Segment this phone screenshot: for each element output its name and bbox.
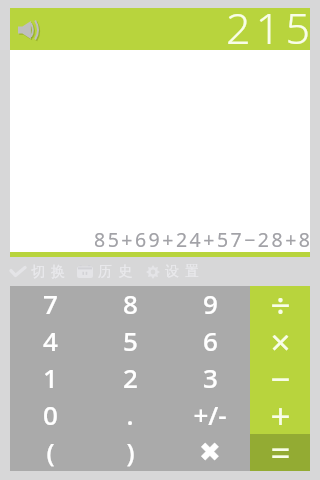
staticText: . bbox=[126, 397, 134, 432]
staticText: 85+69+24+57−28+8 bbox=[94, 226, 313, 253]
staticText: 215 bbox=[226, 0, 316, 57]
button[interactable]: × bbox=[250, 323, 310, 360]
button[interactable]: 切换 bbox=[10, 263, 72, 280]
button[interactable]: = bbox=[250, 434, 310, 471]
staticText: 3 bbox=[203, 360, 218, 395]
button[interactable]: ) bbox=[90, 434, 170, 471]
button[interactable]: Sound bbox=[18, 21, 41, 39]
button[interactable]: 2 bbox=[90, 360, 170, 397]
button[interactable]: ÷ bbox=[250, 286, 310, 323]
staticText: +/- bbox=[193, 397, 227, 432]
staticText: 历史 bbox=[98, 263, 139, 280]
staticText: ÷ bbox=[270, 281, 291, 329]
staticText: ✖ bbox=[199, 437, 221, 467]
button[interactable]: 9 bbox=[170, 286, 250, 323]
button[interactable]: − bbox=[250, 360, 310, 397]
button[interactable]: 设置 bbox=[146, 263, 206, 280]
button[interactable]: 1 bbox=[10, 360, 90, 397]
staticText: = bbox=[270, 429, 291, 477]
staticText: 2 bbox=[123, 360, 138, 395]
staticText: ) bbox=[126, 434, 135, 469]
staticText: − bbox=[270, 355, 291, 403]
staticText: 7 bbox=[43, 286, 58, 321]
button[interactable]: 6 bbox=[170, 323, 250, 360]
staticText: 4 bbox=[43, 323, 58, 358]
button[interactable]: ✖ bbox=[170, 434, 250, 471]
staticText: + bbox=[270, 392, 291, 440]
button[interactable]: +/- bbox=[170, 397, 250, 434]
staticText: 8 bbox=[123, 286, 138, 321]
button[interactable]: 3 bbox=[170, 360, 250, 397]
button[interactable]: + bbox=[250, 397, 310, 434]
button[interactable]: 7 bbox=[10, 286, 90, 323]
staticText: ( bbox=[46, 434, 55, 469]
staticText: 5 bbox=[123, 323, 138, 358]
button[interactable]: . bbox=[90, 397, 170, 434]
button[interactable]: 历史 bbox=[77, 263, 139, 280]
staticText: 9 bbox=[203, 286, 218, 321]
staticText: × bbox=[270, 318, 291, 366]
staticText: 设置 bbox=[165, 263, 206, 280]
button[interactable]: 5 bbox=[90, 323, 170, 360]
staticText: 切换 bbox=[31, 263, 72, 280]
button[interactable]: 0 bbox=[10, 397, 90, 434]
button[interactable]: ( bbox=[10, 434, 90, 471]
button[interactable]: 4 bbox=[10, 323, 90, 360]
staticText: 6 bbox=[203, 323, 218, 358]
button[interactable]: 8 bbox=[90, 286, 170, 323]
staticText: 0 bbox=[43, 397, 58, 432]
staticText: 1 bbox=[43, 360, 58, 395]
